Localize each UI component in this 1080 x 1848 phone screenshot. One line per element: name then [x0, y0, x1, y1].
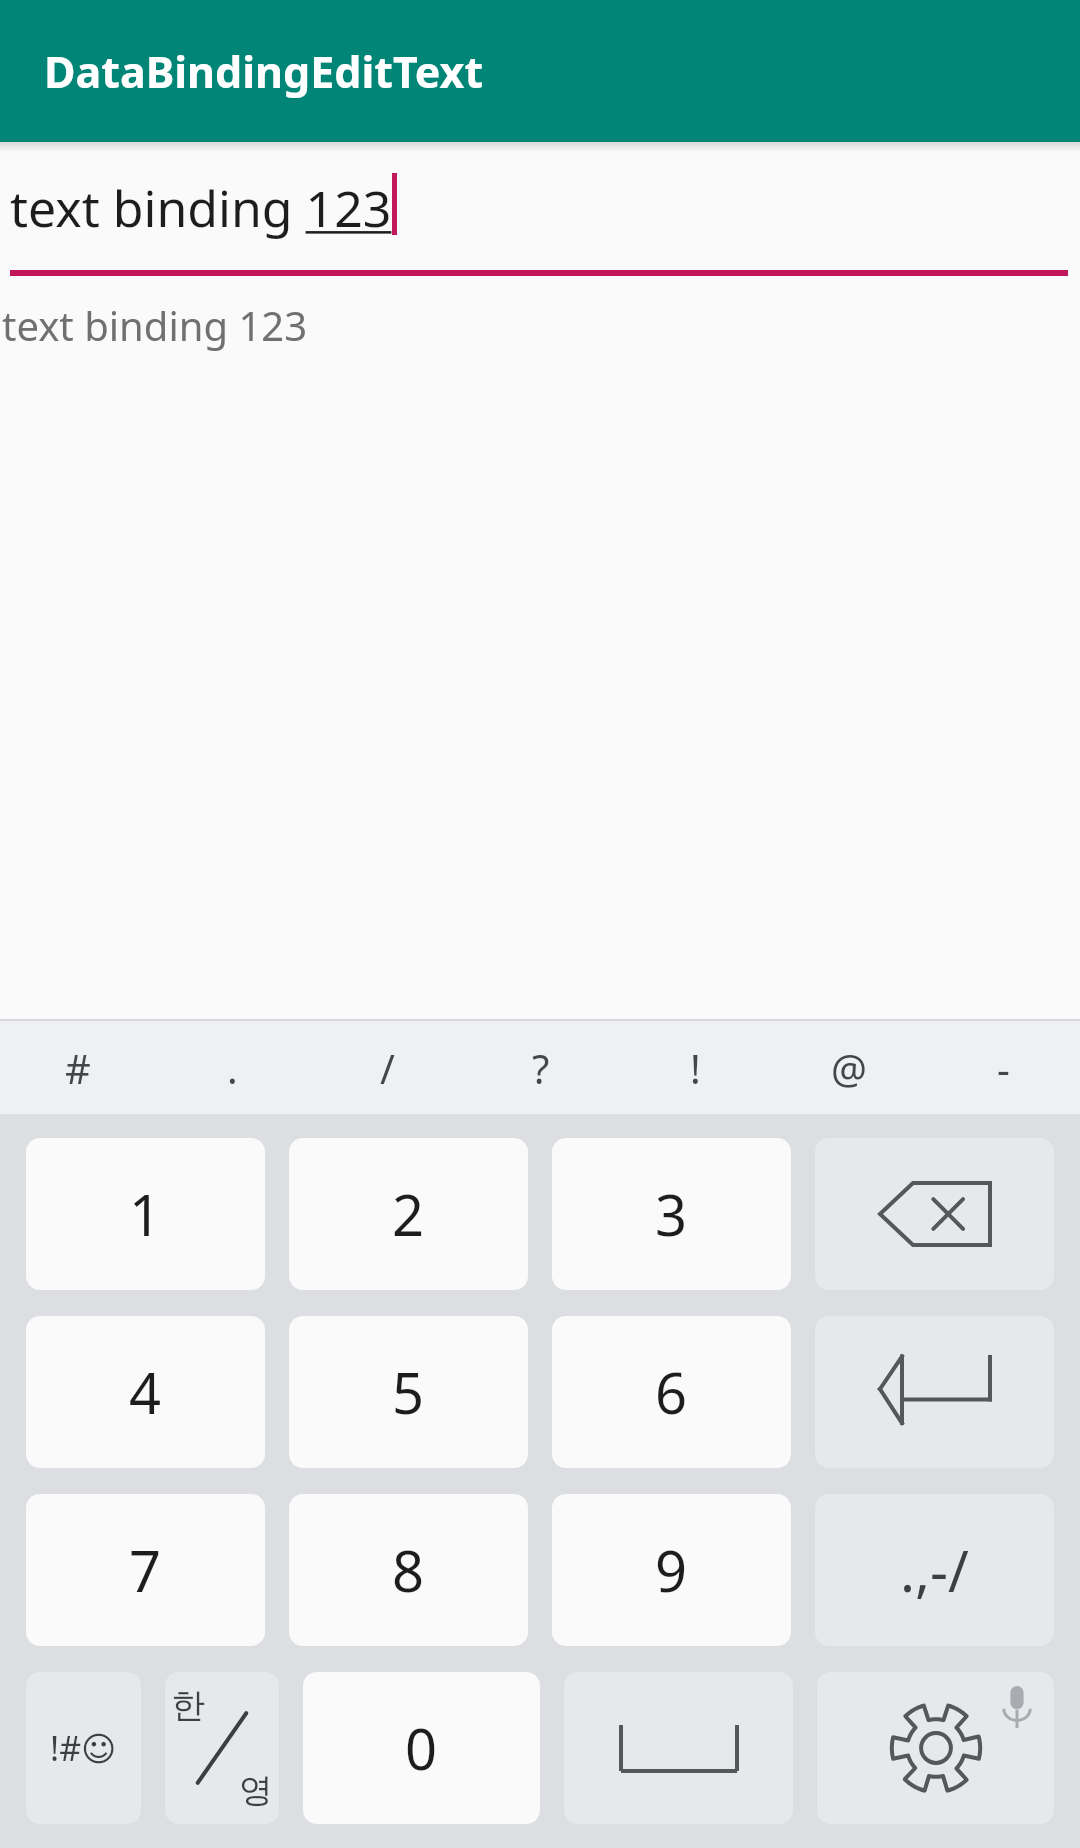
button[interactable]: 6 [552, 1316, 791, 1468]
button[interactable]: Korean English toggle [165, 1672, 279, 1824]
button[interactable]: Backspace [815, 1138, 1054, 1290]
button[interactable]: 0 [303, 1672, 540, 1824]
button[interactable]: ! [618, 1021, 772, 1114]
button[interactable]: 9 [552, 1494, 791, 1646]
staticText: 1 [129, 1176, 162, 1252]
staticText: 7 [129, 1532, 162, 1608]
button[interactable]: Space [564, 1672, 793, 1824]
staticText: / [380, 1041, 395, 1095]
button[interactable]: Enter [815, 1316, 1054, 1468]
staticText: @ [831, 1041, 867, 1095]
button[interactable]: Settings [817, 1672, 1054, 1824]
staticText: DataBindingEditText [44, 42, 484, 101]
button[interactable]: . [155, 1021, 310, 1114]
button[interactable]: 7 [26, 1494, 265, 1646]
button[interactable]: !#☺ [26, 1672, 141, 1824]
staticText: text binding 123 [10, 174, 392, 242]
staticText: . [227, 1041, 238, 1095]
button[interactable]: 8 [289, 1494, 528, 1646]
staticText: 8 [392, 1532, 425, 1608]
staticText: - [997, 1041, 1010, 1095]
staticText: 0 [405, 1710, 438, 1786]
button[interactable]: 1 [26, 1138, 265, 1290]
staticText: 5 [392, 1354, 425, 1430]
staticText: 한 [171, 1684, 205, 1727]
button[interactable]: .,-/ [815, 1494, 1054, 1646]
staticText: .,-/ [900, 1532, 969, 1608]
button[interactable]: 2 [289, 1138, 528, 1290]
staticText: # [65, 1041, 91, 1095]
staticText: text binding 123 [2, 298, 308, 352]
button[interactable]: - [926, 1021, 1080, 1114]
button[interactable]: ? [464, 1021, 618, 1114]
button[interactable]: # [0, 1021, 155, 1114]
staticText: 9 [655, 1532, 688, 1608]
staticText: 영 [239, 1769, 273, 1812]
staticText: 2 [392, 1176, 425, 1252]
button[interactable]: 4 [26, 1316, 265, 1468]
staticText: !#☺ [50, 1725, 117, 1771]
button[interactable]: 3 [552, 1138, 791, 1290]
staticText: 6 [655, 1354, 688, 1430]
button[interactable]: / [310, 1021, 464, 1114]
staticText: ! [690, 1041, 701, 1095]
button[interactable]: 5 [289, 1316, 528, 1468]
staticText: 3 [655, 1176, 688, 1252]
staticText: 4 [129, 1354, 162, 1430]
button[interactable]: @ [772, 1021, 926, 1114]
staticText: ? [532, 1041, 550, 1095]
